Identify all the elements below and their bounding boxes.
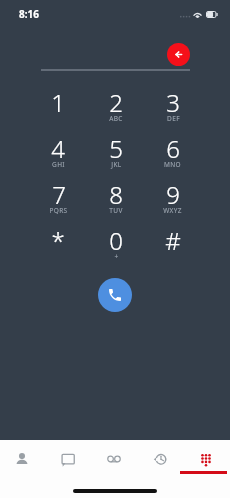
- button[interactable]: 0: [87, 224, 144, 270]
- button[interactable]: 8: [87, 178, 144, 224]
- staticText: 2: [109, 86, 123, 119]
- button[interactable]: Messages: [45, 442, 91, 475]
- staticText: 0: [109, 224, 123, 257]
- button[interactable]: 7: [29, 178, 87, 224]
- button[interactable]: Contacts: [0, 442, 45, 475]
- staticText: +: [114, 252, 119, 261]
- staticText: 8: [109, 178, 123, 211]
- staticText: WXYZ: [163, 206, 182, 215]
- staticText: ABC: [109, 114, 123, 123]
- button[interactable]: #: [144, 224, 201, 270]
- button[interactable]: 2: [87, 86, 144, 132]
- staticText: JKL: [111, 160, 122, 169]
- staticText: 1: [51, 86, 65, 119]
- button[interactable]: 5: [87, 132, 144, 178]
- staticText: 7: [52, 178, 66, 211]
- staticText: GHI: [52, 160, 65, 169]
- staticText: 5: [109, 132, 123, 165]
- button[interactable]: 1: [29, 86, 87, 132]
- button[interactable]: Keypad: [183, 442, 229, 475]
- button[interactable]: Recents: [137, 442, 183, 475]
- button[interactable]: *: [29, 224, 87, 270]
- button[interactable]: Backspace: [167, 43, 190, 66]
- button[interactable]: 3: [144, 86, 201, 132]
- staticText: #: [165, 224, 181, 257]
- staticText: 3: [166, 86, 180, 119]
- button[interactable]: 4: [29, 132, 87, 178]
- staticText: 4: [51, 132, 65, 165]
- button[interactable]: 6: [144, 132, 201, 178]
- staticText: 8:16: [19, 7, 39, 21]
- button[interactable]: Voicemail: [91, 442, 137, 475]
- staticText: 9: [166, 178, 180, 211]
- staticText: TUV: [109, 206, 123, 215]
- staticText: MNO: [164, 160, 181, 169]
- staticText: 6: [166, 132, 180, 165]
- button[interactable]: Call: [98, 278, 132, 312]
- staticText: *: [51, 224, 65, 257]
- staticText: PQRS: [49, 206, 68, 215]
- button[interactable]: 9: [144, 178, 201, 224]
- staticText: DEF: [167, 114, 180, 123]
